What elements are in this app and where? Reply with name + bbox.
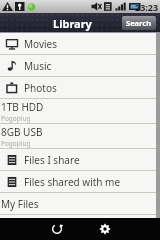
button[interactable]: My Files [0, 193, 160, 214]
staticText: 23:23 [135, 1, 159, 13]
staticText: Movies [24, 37, 58, 51]
button[interactable]: Movies [0, 33, 160, 54]
button[interactable]: Files I share [0, 149, 160, 170]
staticText: Pogoplug [1, 139, 31, 148]
staticText: Files I share [24, 153, 80, 167]
staticText: Music [24, 59, 52, 73]
button[interactable]: 8GB USB [0, 124, 160, 148]
staticText: Pogoplug [1, 114, 31, 123]
button[interactable]: Search [122, 16, 156, 30]
button[interactable]: Photos [0, 77, 160, 98]
button[interactable]: Refresh [47, 219, 67, 239]
staticText: Photos [24, 81, 57, 95]
staticText: My Files [1, 197, 39, 211]
staticText: 8GB USB [1, 125, 43, 139]
button[interactable]: 1TB HDD [0, 99, 160, 123]
staticText: Files shared with me [24, 175, 121, 189]
button[interactable]: Music [0, 55, 160, 76]
button[interactable]: Files shared with me [0, 171, 160, 192]
staticText: 1TB HDD [1, 100, 44, 114]
staticText: Search [126, 18, 152, 28]
staticText: Library [53, 16, 92, 31]
button[interactable]: Settings [95, 219, 115, 239]
